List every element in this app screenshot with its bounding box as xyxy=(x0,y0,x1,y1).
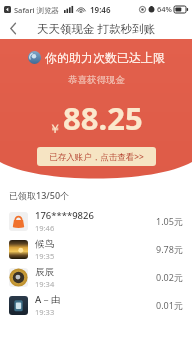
staticText: 0.01元 xyxy=(156,299,183,311)
staticText: 辰辰 xyxy=(35,266,54,278)
staticText: 天天领现金 打款秒到账 xyxy=(37,21,155,37)
staticText: 19:33 xyxy=(35,307,55,317)
button[interactable]: 候鸟 xyxy=(0,235,192,263)
staticText: 19:35 xyxy=(35,251,55,261)
staticText: ￥ xyxy=(49,121,61,136)
button[interactable]: 辰辰 xyxy=(0,263,192,291)
staticText: Safari 浏览器 xyxy=(14,5,60,15)
staticText: 19:46 xyxy=(35,223,55,233)
staticText: 0.02元 xyxy=(156,271,183,283)
staticText: 已存入账户，点击查看>> xyxy=(49,151,144,163)
staticText: 候鸟 xyxy=(35,238,54,250)
staticText: 176****9826 xyxy=(35,209,94,222)
button[interactable]: 176****9826 xyxy=(0,207,192,235)
staticText: 已领取13/50个 xyxy=(9,189,70,201)
staticText: 19:34 xyxy=(35,279,55,289)
button[interactable]: Back xyxy=(0,18,26,39)
button[interactable]: A－由 xyxy=(0,291,192,319)
staticText: 1.05元 xyxy=(156,215,183,227)
staticText: A－由 xyxy=(35,293,61,306)
staticText: 19:46 xyxy=(90,4,111,15)
button[interactable]: 已存入账户，点击查看>> xyxy=(37,147,156,166)
staticText: 你的助力次数已达上限 xyxy=(45,50,165,65)
staticText: 恭喜获得现金 xyxy=(68,74,125,86)
staticText: 88.25 xyxy=(63,97,143,139)
staticText: 64% xyxy=(157,4,172,14)
staticText: 9.78元 xyxy=(156,243,183,255)
